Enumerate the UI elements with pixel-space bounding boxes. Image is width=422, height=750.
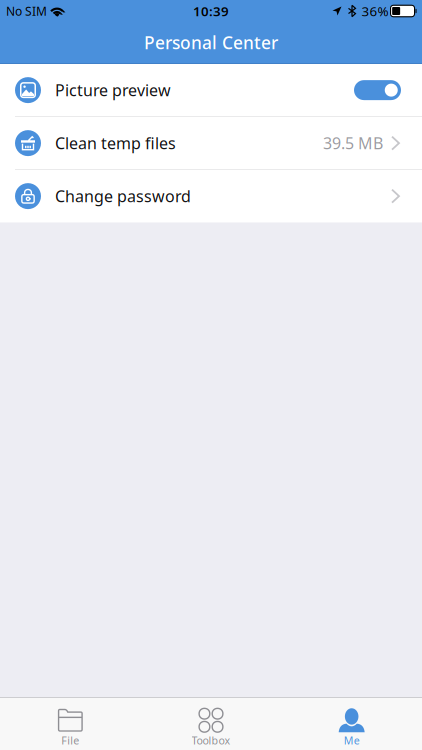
button[interactable]: Me bbox=[281, 698, 422, 750]
button[interactable]: Change password bbox=[0, 170, 422, 222]
staticText: Clean temp files bbox=[55, 132, 176, 154]
staticText: 10:39 bbox=[193, 2, 229, 20]
button[interactable]: Clean temp files bbox=[0, 117, 422, 169]
staticText: 39.5 MB bbox=[323, 132, 383, 154]
staticText: Personal Center bbox=[144, 31, 278, 54]
button[interactable]: File bbox=[0, 698, 141, 750]
button[interactable]: Picture preview bbox=[354, 80, 401, 100]
button[interactable]: Toolbox bbox=[141, 698, 281, 750]
staticText: 36% bbox=[361, 2, 388, 20]
staticText: Toolbox bbox=[191, 733, 230, 747]
staticText: Picture preview bbox=[55, 79, 171, 101]
button[interactable]: Picture preview bbox=[0, 64, 422, 116]
staticText: Me bbox=[344, 733, 360, 747]
staticText: File bbox=[61, 733, 79, 747]
staticText: Change password bbox=[55, 185, 191, 207]
staticText: No SIM bbox=[6, 3, 47, 19]
